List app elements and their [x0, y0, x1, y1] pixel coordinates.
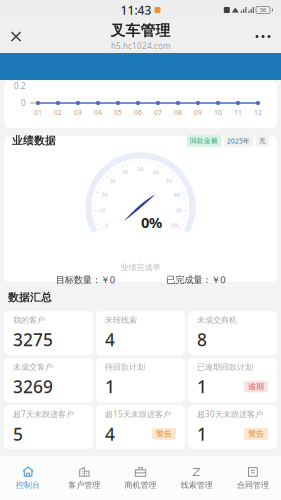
staticText: 40: [122, 168, 128, 176]
staticText: 01: [34, 108, 42, 117]
staticText: 100: [170, 222, 179, 229]
staticText: 07: [154, 108, 162, 117]
staticText: 0%: [141, 213, 162, 232]
button[interactable]: 超15天未跟进客户: [96, 405, 185, 449]
staticText: 3269: [13, 375, 53, 398]
staticText: 控制台: [16, 480, 40, 490]
staticText: 11:43: [120, 2, 151, 18]
staticText: 60: [153, 168, 159, 176]
button[interactable]: 待回款计划: [96, 358, 185, 402]
button[interactable]: 已逾期回款计划: [188, 358, 277, 402]
staticText: 回款金额: [190, 137, 218, 145]
staticText: 3275: [13, 328, 53, 351]
button[interactable]: 控制台: [0, 460, 56, 496]
staticText: 待回款计划: [105, 362, 145, 372]
button[interactable]: 未成交客户: [4, 358, 93, 402]
staticText: 4: [105, 422, 115, 445]
staticText: 0.2: [14, 81, 26, 91]
staticText: 超30天未跟进客户: [197, 409, 263, 419]
staticText: 03: [74, 108, 82, 117]
button[interactable]: 无: [256, 135, 269, 147]
staticText: 90: [176, 207, 182, 214]
staticText: 70: [166, 178, 172, 185]
button[interactable]: 未转线索: [96, 311, 185, 355]
staticText: 目标数量：￥0: [56, 273, 115, 286]
staticText: 0: [105, 222, 108, 229]
staticText: 合同管理: [237, 480, 269, 490]
staticText: 10: [99, 207, 105, 214]
staticText: 超7天未跟进客户: [13, 409, 74, 419]
button[interactable]: 超30天未跟进客户: [188, 405, 277, 449]
staticText: 06: [134, 108, 142, 117]
staticText: 逾期: [248, 382, 264, 391]
button[interactable]: 回款金额: [187, 135, 221, 147]
staticText: 02: [54, 108, 62, 117]
staticText: 10: [214, 108, 222, 117]
staticText: 未转线索: [105, 315, 137, 325]
staticText: 我的客户: [13, 315, 45, 325]
staticText: 11: [234, 108, 242, 117]
staticText: 20: [101, 191, 107, 198]
button[interactable]: 我的客户: [4, 311, 93, 355]
staticText: 超15天未跟进客户: [105, 409, 171, 419]
staticText: 8: [197, 328, 207, 351]
staticText: 09: [194, 108, 202, 117]
staticText: 2025年: [227, 136, 250, 145]
button[interactable]: 客户管理: [56, 460, 112, 496]
button[interactable]: 超7天未跟进客户: [4, 405, 93, 449]
staticText: 1: [105, 375, 115, 398]
staticText: 已完成量：￥0: [166, 273, 225, 286]
button[interactable]: 商机管理: [112, 460, 169, 496]
staticText: 叉车管理: [110, 22, 170, 40]
button[interactable]: 未成交商机: [188, 311, 277, 355]
staticText: 08: [174, 108, 182, 117]
staticText: 业绩数据: [12, 134, 56, 147]
staticText: 警告: [248, 429, 264, 439]
button[interactable]: More: [245, 20, 281, 53]
button[interactable]: 2025年: [224, 134, 253, 147]
staticText: 1: [197, 422, 207, 445]
staticText: 1: [197, 375, 207, 398]
staticText: 客户管理: [68, 480, 100, 490]
staticText: 5: [13, 422, 23, 445]
staticText: h5.hc1024.com: [111, 41, 170, 51]
staticText: 0: [21, 98, 26, 108]
staticText: 数据汇总: [8, 291, 52, 304]
staticText: 50: [137, 165, 143, 172]
staticText: 未成交客户: [13, 362, 53, 372]
staticText: 56: [260, 6, 266, 14]
staticText: 未成交商机: [197, 315, 237, 325]
button[interactable]: Close: [0, 20, 32, 53]
staticText: 80: [174, 191, 180, 198]
staticText: 线索管理: [181, 480, 213, 490]
staticText: 05: [114, 108, 122, 117]
staticText: 4: [105, 328, 115, 351]
button[interactable]: 合同管理: [225, 460, 281, 496]
staticText: 业绩完成率: [120, 262, 160, 272]
staticText: 警告: [156, 429, 172, 439]
staticText: 30: [109, 178, 115, 185]
staticText: 12: [254, 108, 262, 117]
button[interactable]: 线索管理: [169, 460, 225, 496]
staticText: 无: [259, 137, 266, 145]
staticText: 04: [94, 108, 102, 117]
staticText: 商机管理: [124, 480, 156, 490]
staticText: 已逾期回款计划: [197, 362, 253, 372]
